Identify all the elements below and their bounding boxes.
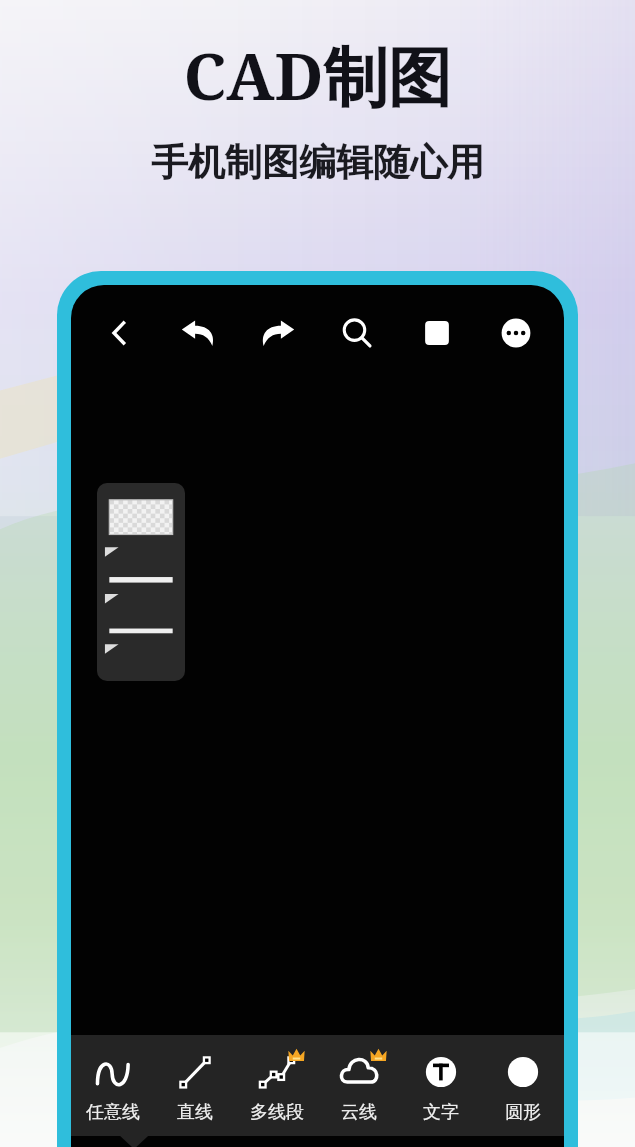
- button[interactable]: 多线段: [236, 1035, 318, 1136]
- button[interactable]: More options: [490, 307, 542, 359]
- staticText: 圆形: [505, 1101, 541, 1124]
- staticText: 文字: [423, 1101, 459, 1124]
- staticText: 任意线: [86, 1101, 140, 1124]
- staticText: 多线段: [250, 1101, 304, 1124]
- button[interactable]: Redo: [252, 307, 304, 359]
- staticText: 云线: [341, 1101, 377, 1124]
- button[interactable]: Search: [331, 307, 383, 359]
- button[interactable]: 任意线: [71, 1035, 154, 1136]
- button[interactable]: 云线: [318, 1035, 400, 1136]
- button[interactable]: 文字: [400, 1035, 482, 1136]
- button[interactable]: Undo: [172, 307, 224, 359]
- button[interactable]: [97, 483, 185, 681]
- staticText: 直线: [177, 1101, 213, 1124]
- button[interactable]: Stop: [411, 307, 463, 359]
- staticText: 手机制图编辑随心用: [151, 139, 484, 186]
- button[interactable]: 直线: [154, 1035, 236, 1136]
- staticText: CAD制图: [183, 32, 452, 119]
- button[interactable]: Back: [93, 307, 145, 359]
- button[interactable]: 圆形: [482, 1035, 564, 1136]
